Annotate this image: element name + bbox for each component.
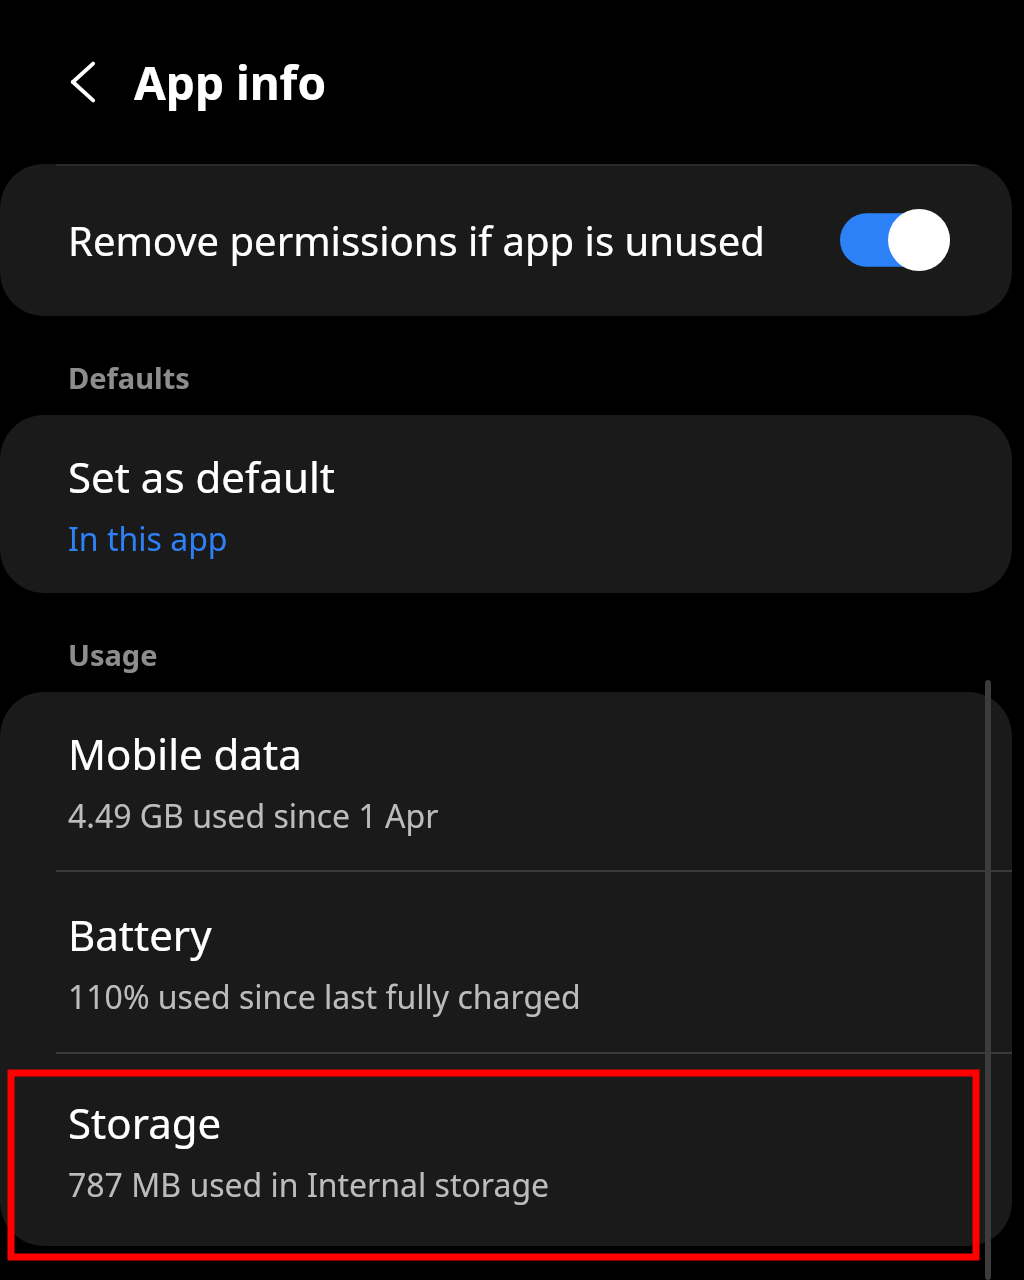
- button[interactable]: Set as default: [0, 415, 1012, 593]
- button[interactable]: Mobile data: [0, 692, 1012, 870]
- button[interactable]: Storage: [0, 1054, 1012, 1246]
- staticText: Usage: [68, 635, 158, 674]
- button[interactable]: Remove permissions if app is unused togg…: [840, 209, 950, 271]
- staticText: In this app: [68, 517, 228, 561]
- button[interactable]: Battery: [0, 872, 1012, 1052]
- staticText: App info: [134, 51, 327, 114]
- staticText: Battery: [68, 906, 212, 963]
- staticText: Storage: [68, 1094, 222, 1151]
- staticText: Set as default: [68, 448, 335, 505]
- staticText: Mobile data: [68, 725, 302, 782]
- staticText: Defaults: [68, 358, 190, 397]
- staticText: 110% used since last fully charged: [68, 975, 581, 1019]
- staticText: 787 MB used in Internal storage: [68, 1163, 550, 1207]
- staticText: 4.49 GB used since 1 Apr: [68, 794, 439, 838]
- button[interactable]: Back: [48, 47, 118, 117]
- staticText: Remove permissions if app is unused: [68, 213, 765, 267]
- button[interactable]: Remove permissions if app is unused: [0, 164, 1012, 316]
